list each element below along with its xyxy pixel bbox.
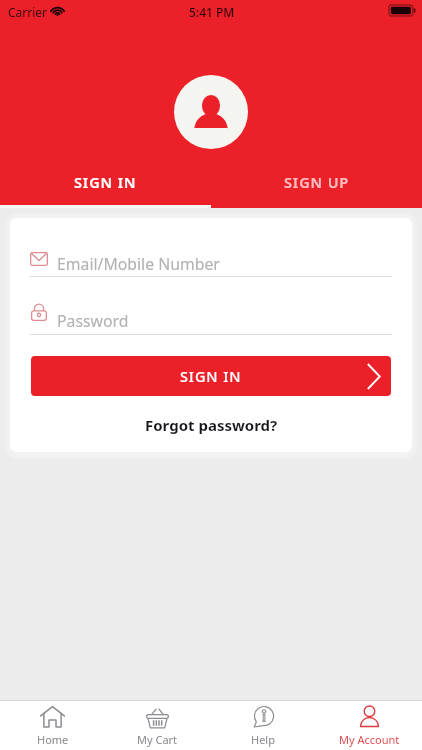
staticText: My Cart [137,732,178,747]
button[interactable]: SIGN IN [31,356,391,396]
button[interactable]: Forgot password? [10,412,412,438]
staticText: 5:41 PM [189,4,235,20]
button[interactable]: SIGN IN [0,167,211,197]
staticText: SIGN IN [74,172,137,192]
button[interactable]: My Cart [105,701,210,750]
staticText: Forgot password? [145,415,278,435]
button[interactable]: SIGN UP [211,167,422,197]
button[interactable]: Home [0,701,105,750]
button[interactable]: Profile picture [174,75,248,149]
staticText: Carrier [8,4,48,20]
button[interactable]: Help [210,701,316,750]
staticText: Email/Mobile Number [57,253,220,275]
staticText: Password [57,310,129,332]
staticText: Home [37,732,69,747]
staticText: My Account [339,732,400,747]
button[interactable]: Email/Mobile Number [30,246,392,277]
staticText: SIGN UP [284,172,350,192]
staticText: SIGN IN [180,366,242,386]
staticText: Help [251,732,275,747]
button[interactable]: Password [30,300,392,335]
button[interactable]: My Account [316,701,422,750]
